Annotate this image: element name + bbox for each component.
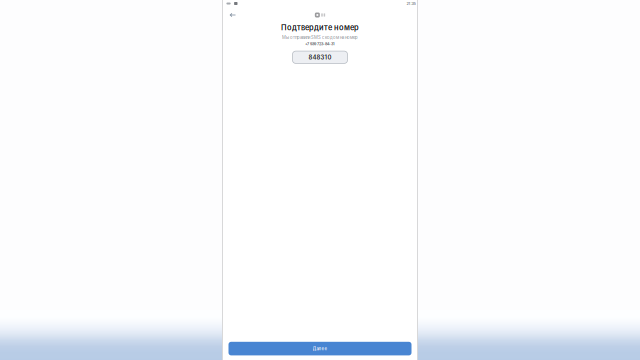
button[interactable]: Далее (228, 342, 411, 355)
staticText: Мы отправили SMS с кодом на номер (282, 35, 358, 40)
staticText: 21:35 (406, 1, 415, 6)
button[interactable]: Back (225, 8, 240, 21)
staticText: Далее (312, 346, 327, 351)
staticText: 848310 (308, 54, 331, 61)
staticText: +7 939 723-84-31 (305, 42, 335, 46)
staticText: Подтвердите номер (281, 23, 359, 32)
